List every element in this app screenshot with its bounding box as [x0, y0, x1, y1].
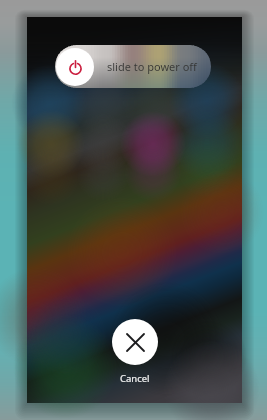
staticText: Cancel — [120, 372, 150, 385]
staticText: slide to power off — [107, 59, 197, 74]
button[interactable]: slide to power off — [55, 45, 211, 88]
button[interactable]: Cancel — [112, 319, 158, 365]
button[interactable]: Power off — [56, 48, 94, 86]
